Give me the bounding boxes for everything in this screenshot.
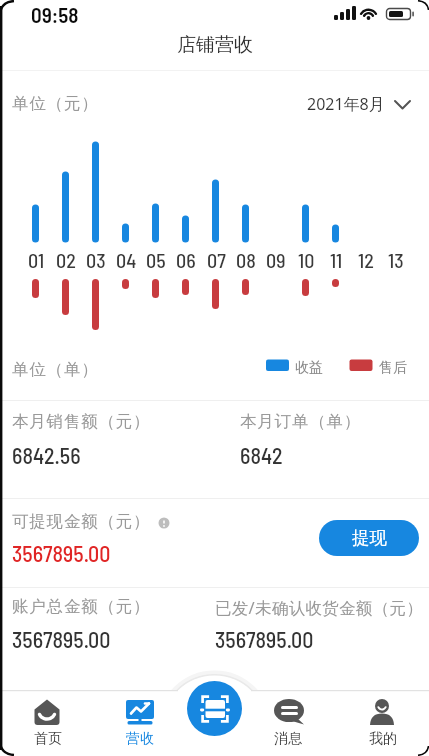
button[interactable] [300, 86, 416, 118]
staticText: 账户总金额（元） [12, 596, 151, 617]
button[interactable] [187, 681, 242, 736]
staticText: 06 [176, 248, 196, 272]
staticText: 单位（单） [12, 359, 99, 380]
staticText: 11 [330, 248, 343, 272]
staticText: 售后 [379, 359, 407, 377]
staticText: 我的 [369, 730, 397, 748]
staticText: 本月订单（单） [240, 411, 362, 432]
button[interactable]: 消息 [260, 694, 316, 754]
staticText: 10 [298, 248, 315, 272]
staticText: 09 [266, 248, 286, 272]
staticText: 首页 [34, 730, 62, 748]
staticText: 02 [56, 248, 76, 272]
staticText: 07 [207, 248, 226, 272]
staticText: 2021年8月 [307, 93, 385, 115]
staticText: 3567895.00 [12, 626, 111, 652]
staticText: 收益 [295, 359, 323, 377]
staticText: 08 [236, 248, 256, 272]
staticText: 提现 [352, 527, 387, 549]
staticText: 店铺营收 [177, 33, 253, 57]
staticText: 本月销售额（元） [12, 411, 151, 432]
staticText: 01 [28, 248, 45, 272]
staticText: 09:58 [31, 2, 79, 27]
button[interactable]: 我的 [355, 694, 411, 754]
staticText: 3567895.00 [215, 626, 314, 652]
staticText: 03 [86, 248, 106, 272]
staticText: 已发/未确认收货金额（元） [215, 596, 424, 619]
button[interactable]: 营收 [112, 694, 168, 754]
staticText: 消息 [274, 730, 302, 748]
staticText: 13 [388, 248, 404, 272]
staticText: 营收 [126, 730, 154, 748]
button[interactable]: 首页 [20, 694, 76, 754]
staticText: 6842 [240, 442, 283, 468]
staticText: 3567895.00 [12, 540, 111, 566]
staticText: 单位（元） [12, 93, 99, 114]
staticText: 12 [358, 248, 374, 272]
staticText: 可提现金额（元） [12, 511, 151, 532]
staticText: 05 [146, 248, 166, 272]
staticText: 6842.56 [12, 442, 81, 468]
staticText: 04 [116, 248, 137, 272]
button[interactable]: 提现 [319, 520, 419, 556]
